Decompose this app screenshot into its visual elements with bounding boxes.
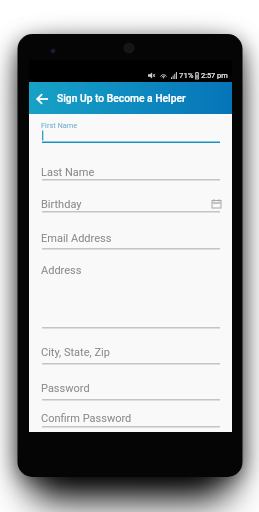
- button[interactable]: Birthday: [42, 180, 220, 212]
- staticText: Last Name: [41, 166, 95, 179]
- staticText: Sign Up to Become a Helper: [57, 92, 186, 104]
- button[interactable]: First Name: [42, 114, 220, 143]
- staticText: Password: [41, 382, 90, 395]
- staticText: Email Address: [41, 232, 112, 245]
- button[interactable]: Password: [42, 364, 220, 400]
- button[interactable]: Back: [28, 83, 55, 114]
- staticText: Address: [41, 264, 82, 277]
- staticText: Birthday: [41, 198, 82, 211]
- button[interactable]: Confirm Password: [42, 399, 220, 427]
- staticText: 2:57 pm: [201, 71, 228, 80]
- staticText: Confirm Password: [41, 412, 132, 425]
- button[interactable]: Email Address: [42, 212, 220, 249]
- button[interactable]: Last Name: [42, 143, 220, 180]
- staticText: First Name: [41, 121, 78, 130]
- button[interactable]: Address: [42, 249, 220, 328]
- staticText: 71%: [179, 71, 194, 80]
- button[interactable]: City, State, Zip: [42, 328, 220, 364]
- staticText: City, State, Zip: [41, 346, 110, 359]
